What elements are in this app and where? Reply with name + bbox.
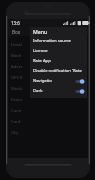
staticText: Menu: [33, 28, 48, 35]
staticText: GPS 8: [11, 75, 23, 81]
button[interactable]: Navigation buttons (lock): [30, 76, 87, 86]
button[interactable]: Modu: [11, 83, 88, 94]
staticText: Instal: [11, 42, 22, 48]
staticText: Featu: [11, 97, 22, 103]
button[interactable]: Rate App: [30, 56, 87, 66]
staticText: Dark theme: [33, 88, 54, 94]
staticText: Adver: [11, 64, 23, 70]
staticText: Licence: [33, 48, 48, 54]
button[interactable]: Conn: [11, 105, 88, 116]
staticText: Rate App: [33, 58, 51, 64]
staticText: Conn: [11, 108, 22, 114]
button[interactable]: Adver: [11, 61, 88, 72]
staticText: Modu: [11, 86, 23, 92]
staticText: 13:6: [11, 20, 20, 26]
button[interactable]: Disable notification 'Rate app': [30, 66, 87, 76]
button[interactable]: Featu: [11, 94, 88, 105]
staticText: Moth: [11, 53, 22, 59]
button[interactable]: Licence: [30, 46, 87, 56]
staticText: Disable notification 'Rate app': [33, 68, 85, 74]
button[interactable]: GPS 8: [11, 72, 88, 83]
staticText: Obj: [11, 130, 18, 136]
button[interactable]: Conf: [11, 116, 88, 127]
button[interactable]: Toggle: [75, 78, 85, 85]
staticText: Information source: [33, 38, 71, 44]
button[interactable]: Obj: [11, 127, 88, 138]
button[interactable]: Information source: [30, 36, 87, 46]
button[interactable]: Box: [11, 28, 22, 36]
staticText: Navigation buttons (lock): [33, 78, 54, 84]
button[interactable]: Moth: [11, 50, 88, 61]
staticText: Box: [12, 29, 21, 35]
button[interactable]: Instal: [11, 39, 88, 50]
button[interactable]: Toggle: [75, 88, 85, 95]
button[interactable]: Dark theme: [30, 86, 87, 96]
staticText: Conf: [11, 119, 21, 125]
